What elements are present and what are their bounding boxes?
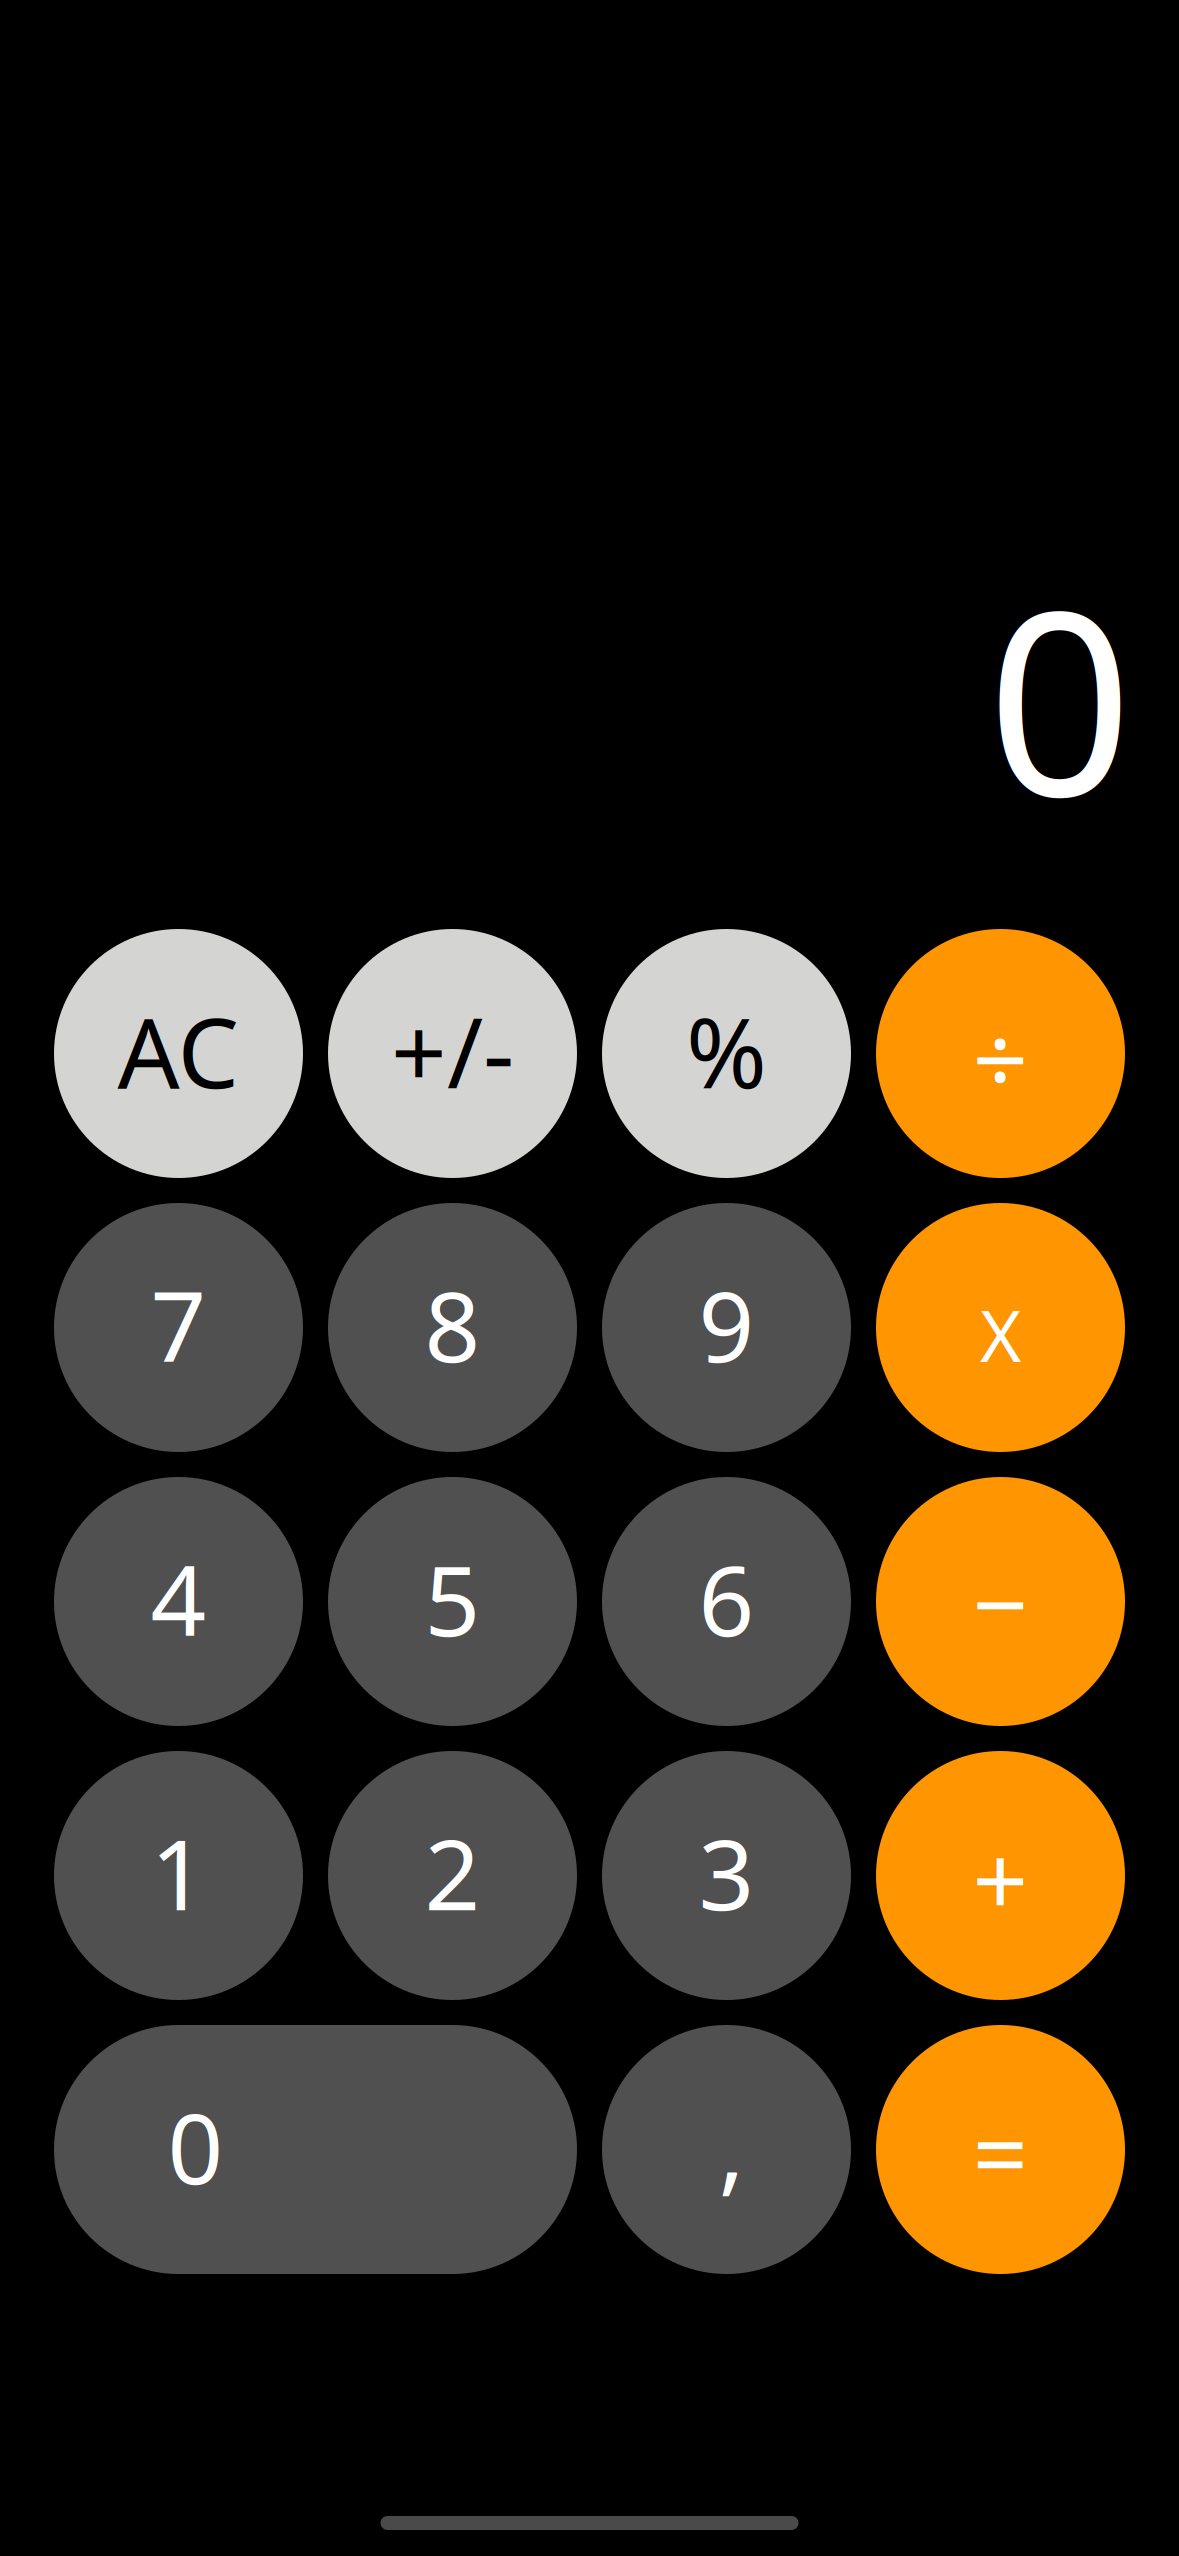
staticText: 4 xyxy=(150,1534,206,1663)
button[interactable]: Decimal separator xyxy=(602,2025,851,2274)
staticText: 0 xyxy=(167,2082,223,2211)
staticText: 8 xyxy=(424,1260,480,1389)
staticText: 0 xyxy=(987,527,1133,866)
staticText: 7 xyxy=(150,1260,206,1389)
staticText: 6 xyxy=(698,1534,754,1663)
staticText: , xyxy=(718,2081,744,2210)
staticText: = xyxy=(972,2087,1028,2216)
button[interactable]: Change sign xyxy=(328,929,577,1178)
button[interactable]: Equals xyxy=(876,2025,1125,2274)
button[interactable]: 5 xyxy=(328,1477,577,1726)
staticText: 1 xyxy=(150,1808,206,1937)
staticText: AC xyxy=(117,986,239,1115)
button[interactable]: 0 xyxy=(54,2025,577,2274)
button[interactable]: 6 xyxy=(602,1477,851,1726)
staticText: % xyxy=(686,986,767,1115)
staticText: + xyxy=(972,1814,1028,1943)
button[interactable]: 3 xyxy=(602,1751,851,2000)
button[interactable]: 8 xyxy=(328,1203,577,1452)
staticText: − xyxy=(972,1538,1028,1667)
button[interactable]: 1 xyxy=(54,1751,303,2000)
button[interactable]: 4 xyxy=(54,1477,303,1726)
button[interactable]: Divide xyxy=(876,929,1125,1178)
button[interactable]: 9 xyxy=(602,1203,851,1452)
button[interactable]: Multiply xyxy=(876,1203,1125,1452)
button[interactable]: 2 xyxy=(328,1751,577,2000)
staticText: 2 xyxy=(424,1808,480,1937)
staticText: +/- xyxy=(391,986,514,1115)
button[interactable]: All clear xyxy=(54,929,303,1178)
staticText: ÷ xyxy=(972,993,1028,1122)
button[interactable]: Percent xyxy=(602,929,851,1178)
staticText: X xyxy=(980,1288,1021,1381)
button[interactable]: 7 xyxy=(54,1203,303,1452)
staticText: 3 xyxy=(698,1808,754,1937)
staticText: 9 xyxy=(698,1260,754,1389)
button[interactable]: Minus xyxy=(876,1477,1125,1726)
staticText: 5 xyxy=(424,1534,480,1663)
button[interactable]: Plus xyxy=(876,1751,1125,2000)
